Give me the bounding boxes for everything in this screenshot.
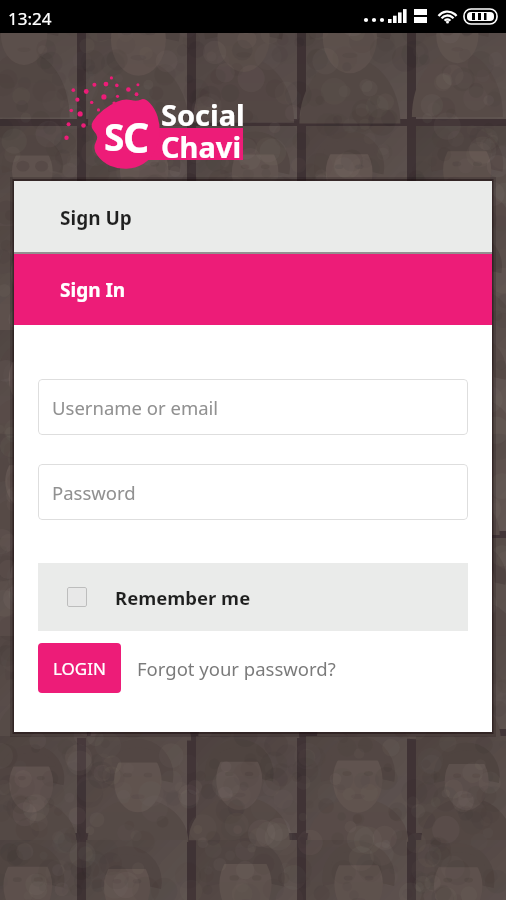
staticText: Forgot your password? — [137, 656, 336, 681]
staticText: LOGIN — [53, 657, 106, 680]
button[interactable]: Username or email — [38, 379, 468, 435]
staticText: Chavi — [161, 127, 242, 166]
staticText: Password — [52, 480, 136, 505]
staticText: C — [123, 109, 150, 165]
staticText: Sign Up — [60, 205, 132, 231]
staticText: Remember me — [115, 585, 251, 610]
staticText: Username or email — [52, 395, 219, 420]
staticText: Social — [161, 95, 245, 134]
staticText: 13:24 — [8, 7, 52, 30]
button[interactable]: Forgot your password? — [137, 643, 336, 693]
button[interactable]: Sign In — [14, 254, 492, 325]
button[interactable]: Sign Up — [14, 181, 492, 254]
button[interactable]: Remember me — [38, 563, 468, 631]
staticText: Sign In — [60, 277, 126, 303]
staticText: S — [104, 111, 125, 161]
button[interactable]: Password — [38, 464, 468, 520]
button[interactable]: LOGIN — [38, 643, 121, 693]
